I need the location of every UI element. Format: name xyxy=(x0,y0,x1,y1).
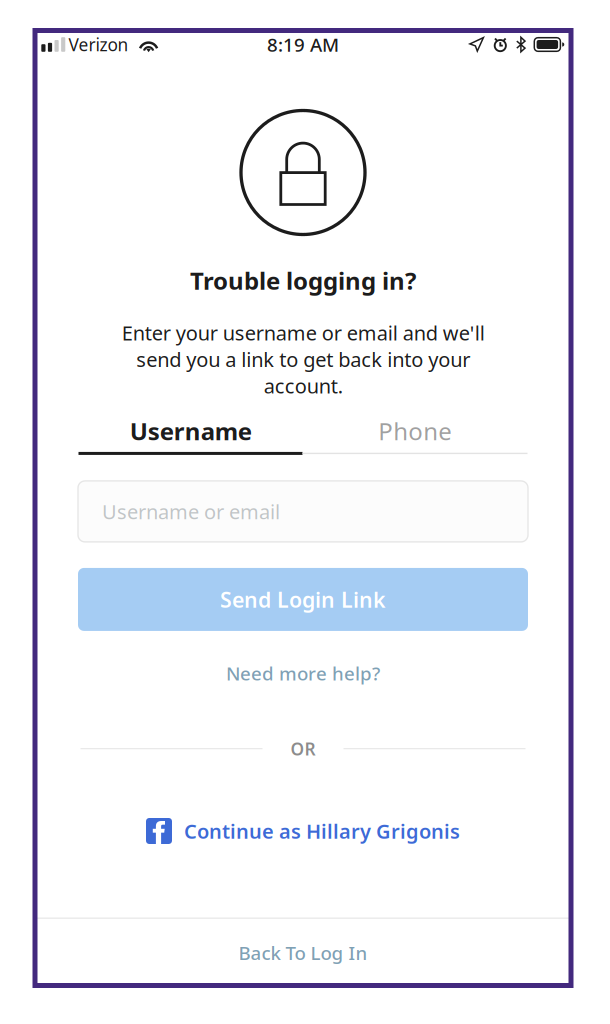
staticText: Trouble logging in? xyxy=(190,264,416,296)
button[interactable]: Need more help? xyxy=(210,654,396,693)
staticText: Username xyxy=(130,415,252,447)
staticText: Phone xyxy=(378,415,452,447)
staticText: 8:19 AM xyxy=(267,32,339,57)
staticText: Verizon xyxy=(69,33,129,56)
staticText: Send Login Link xyxy=(220,585,386,614)
button[interactable]: Phone xyxy=(303,410,527,452)
button[interactable]: Send Login Link xyxy=(78,568,528,631)
staticText: Need more help? xyxy=(226,661,380,686)
staticText: Back To Log In xyxy=(238,940,367,965)
staticText: Continue as Hillary Grigonis xyxy=(184,818,460,844)
button[interactable]: Continue as Hillary Grigonis xyxy=(146,809,460,853)
button[interactable]: Back To Log In xyxy=(35,919,571,986)
staticText: Username or email xyxy=(102,498,280,525)
staticText: OR xyxy=(290,737,315,760)
staticText: Enter your username or email and we'll s… xyxy=(121,319,484,399)
button[interactable]: Username xyxy=(78,410,303,452)
